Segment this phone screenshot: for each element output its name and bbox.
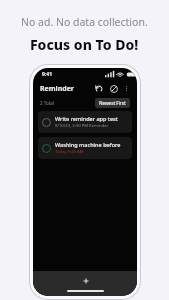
- button[interactable]: Washing machine before going out: [38, 137, 132, 159]
- staticText: Newest First: [99, 100, 126, 106]
- button[interactable]: More options: [121, 83, 132, 94]
- button[interactable]: Undo: [92, 82, 105, 95]
- staticText: 9:41: [42, 71, 52, 78]
- staticText: Reminder: [40, 84, 74, 94]
- button[interactable]: Write reminder app test code: [38, 111, 132, 133]
- staticText: Today 9:45 AM: [55, 149, 84, 155]
- staticText: Washing machine before going out: [55, 141, 128, 148]
- button[interactable]: Add reminder: [79, 274, 92, 287]
- staticText: No ad. No data collection.: [21, 15, 148, 29]
- button[interactable]: Hide completed: [107, 82, 120, 95]
- staticText: 2 Total: [40, 100, 54, 106]
- staticText: 8/10/23, 3:30 PM Reminder: [55, 123, 109, 129]
- button[interactable]: Newest First: [95, 98, 130, 108]
- staticText: Focus on To Do!: [30, 35, 139, 54]
- staticText: Write reminder app test code: [55, 115, 128, 122]
